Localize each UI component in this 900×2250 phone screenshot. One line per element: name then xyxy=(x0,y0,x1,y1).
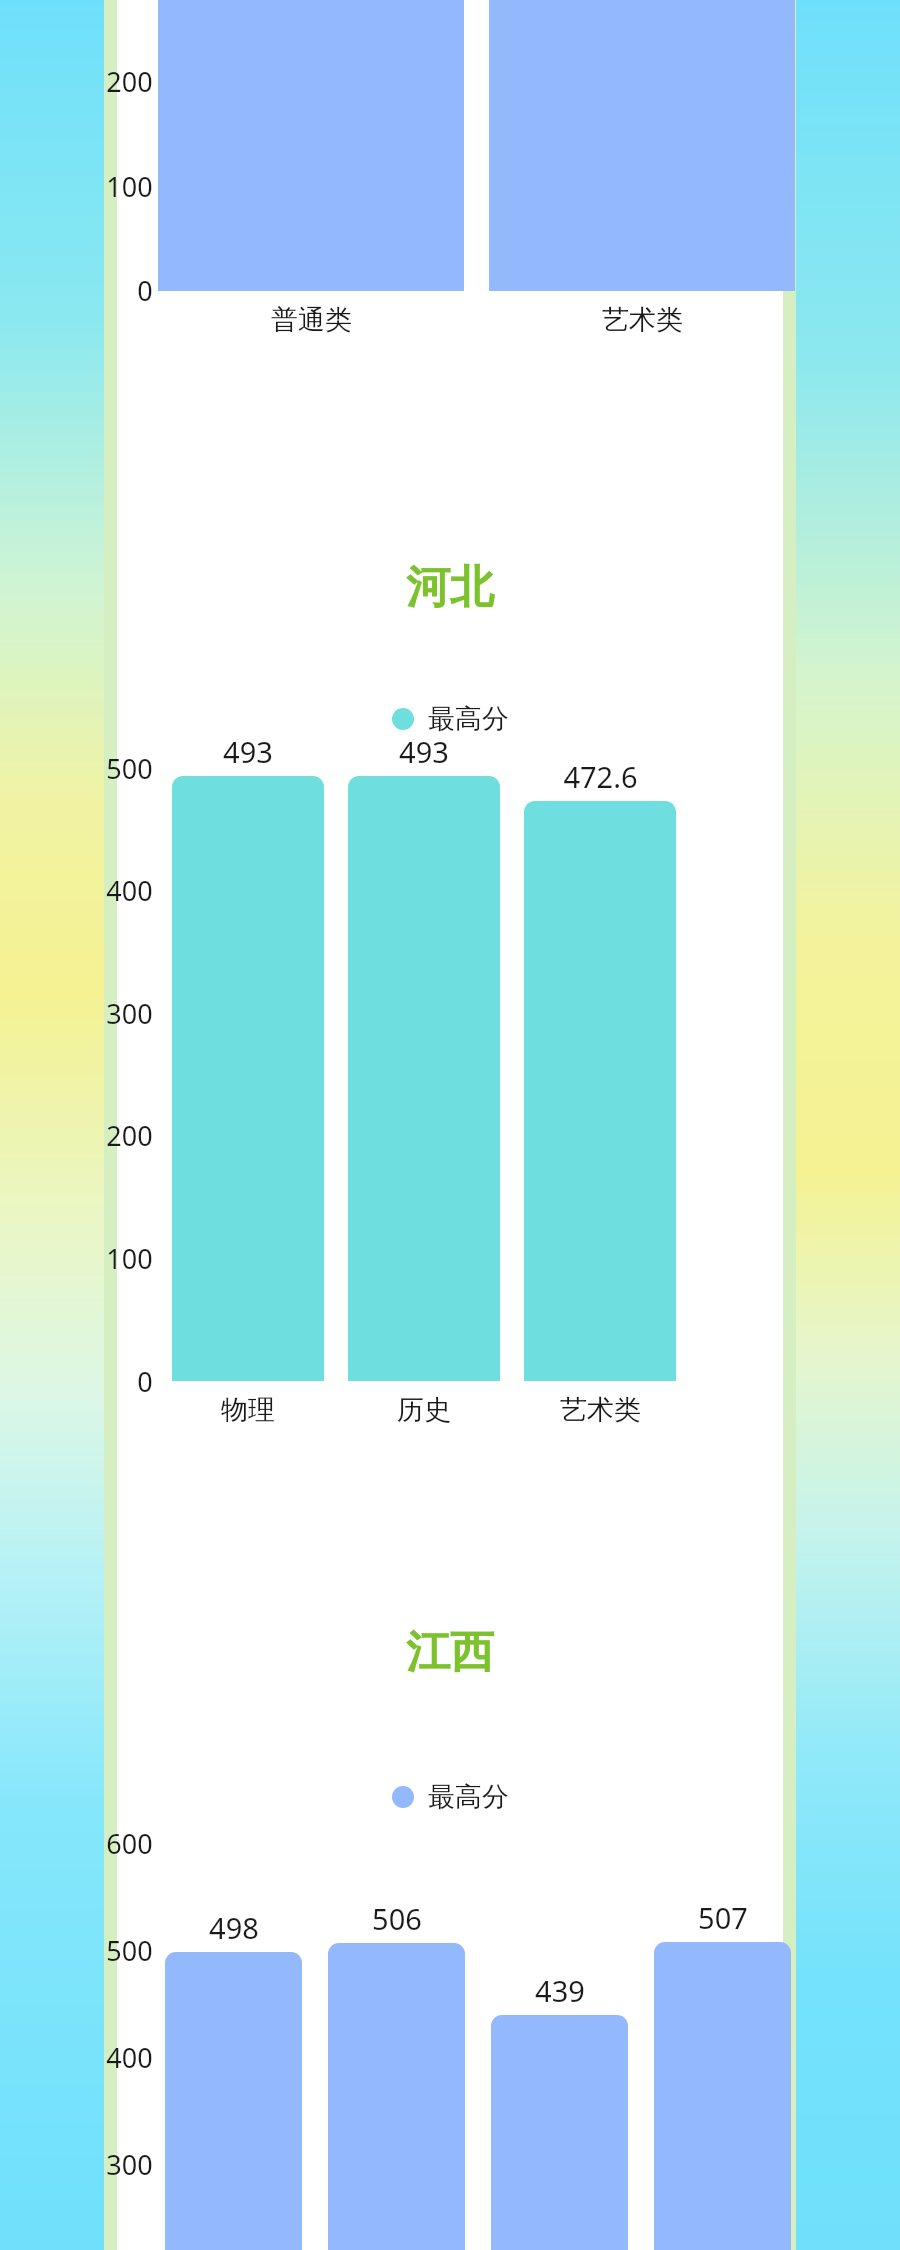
staticText: 0 xyxy=(137,1363,153,1400)
staticText: 500 xyxy=(106,750,153,787)
staticText: 472.6 xyxy=(563,757,638,796)
staticText: 100 xyxy=(106,1240,153,1277)
staticText: 439 xyxy=(535,1971,585,2010)
button[interactable]: 最高分 xyxy=(117,702,783,736)
staticText: 普通类 xyxy=(271,303,352,337)
button[interactable] xyxy=(348,776,500,1381)
staticText: 河北 xyxy=(406,560,494,615)
staticText: 最高分 xyxy=(428,1780,509,1814)
staticText: 300 xyxy=(106,2146,153,2183)
button[interactable]: 江西 xyxy=(117,1625,783,1680)
staticText: 507 xyxy=(698,1898,748,1937)
button[interactable]: 最高分 xyxy=(117,1780,783,1814)
button[interactable] xyxy=(172,776,324,1381)
staticText: 506 xyxy=(372,1899,422,1938)
staticText: 600 xyxy=(106,1825,153,1862)
staticText: 艺术类 xyxy=(560,1393,641,1427)
staticText: 艺术类 xyxy=(602,303,683,337)
staticText: 江西 xyxy=(406,1625,494,1680)
staticText: 100 xyxy=(106,168,153,205)
staticText: 200 xyxy=(106,1117,153,1154)
button[interactable]: 河北 xyxy=(117,560,783,615)
staticText: 498 xyxy=(209,1908,259,1947)
button[interactable] xyxy=(491,2015,628,2250)
staticText: 最高分 xyxy=(428,702,509,736)
staticText: 历史 xyxy=(397,1393,451,1427)
button[interactable] xyxy=(328,1943,465,2250)
staticText: 493 xyxy=(223,732,273,771)
staticText: 400 xyxy=(106,2039,153,2076)
staticText: 400 xyxy=(106,872,153,909)
button[interactable] xyxy=(524,801,676,1381)
staticText: 0 xyxy=(137,272,153,309)
staticText: 200 xyxy=(106,63,153,100)
staticText: 物理 xyxy=(221,1393,275,1427)
staticText: 493 xyxy=(399,732,449,771)
staticText: 300 xyxy=(106,995,153,1032)
button[interactable] xyxy=(165,1952,302,2250)
staticText: 500 xyxy=(106,1932,153,1969)
